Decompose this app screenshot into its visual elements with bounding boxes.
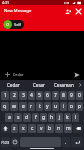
button[interactable]: y [44,102,51,111]
staticText: l [75,114,77,121]
button[interactable]: 3 [19,91,27,100]
button[interactable]: Cesarean [51,80,76,90]
staticText: w [12,103,16,110]
button[interactable]: O [3,20,21,29]
button[interactable]: g [40,113,47,122]
staticText: t [39,103,41,110]
button[interactable]: Shift [1,124,10,133]
button[interactable]: 5 [36,91,43,100]
button[interactable]: n [55,124,63,133]
button[interactable]: Enter [71,137,83,147]
button[interactable]: Add person [62,6,73,17]
staticText: . [65,139,67,146]
button[interactable]: k [64,113,71,122]
button[interactable]: f [32,113,39,122]
button[interactable]: h [48,113,55,122]
button[interactable]: Backspace [73,124,83,133]
button[interactable]: u [52,102,59,111]
button[interactable]: 8 [60,91,67,100]
staticText: p [78,103,82,110]
staticText: 4:31 [2,0,9,5]
button[interactable]: l [72,113,79,122]
button[interactable]: s [14,113,22,122]
button[interactable]: m [64,124,72,133]
button[interactable]: t [36,102,43,111]
button[interactable]: r [28,102,35,111]
staticText: z [13,125,16,132]
staticText: g [42,114,46,121]
button[interactable]: 9 [68,91,75,100]
button[interactable]: . [62,137,70,147]
button[interactable]: b [46,124,54,133]
staticText: ?123 [1,140,10,145]
button[interactable]: i [60,102,67,111]
staticText: j [59,114,61,121]
staticText: v [40,125,43,132]
staticText: b [48,125,52,132]
staticText: 0 [78,92,81,99]
staticText: o [70,103,74,110]
staticText: New Message [4,8,32,14]
button[interactable]: o [68,102,75,111]
button[interactable]: q [1,102,9,111]
staticText: 9 [70,92,73,99]
staticText: k [66,114,69,121]
button[interactable]: z [11,124,18,133]
button[interactable]: e [19,102,27,111]
button[interactable]: 0 [76,91,83,100]
staticText: y [46,103,49,110]
staticText: d [25,114,29,121]
button[interactable]: 6 [44,91,51,100]
button[interactable]: 1 [1,91,9,100]
staticText: c [31,125,34,132]
staticText: m [66,125,71,132]
staticText: n [57,125,61,132]
staticText: h [50,114,54,121]
button[interactable]: c [28,124,36,133]
button[interactable]: ?123 [1,137,10,147]
button[interactable]: x [19,124,27,133]
staticText: 4 [30,92,33,99]
button[interactable]: v [37,124,45,133]
staticText: 1 [4,92,7,99]
staticText: i [63,103,65,110]
button[interactable]: Send [71,69,83,80]
staticText: 5 [38,92,41,99]
staticText: f [35,114,37,121]
staticText: q [3,103,7,110]
staticText: Self [14,22,21,27]
button[interactable]: w [10,102,18,111]
staticText: Cedar [7,82,20,88]
staticText: u [54,103,58,110]
button[interactable]: 4 [28,91,35,100]
button[interactable]: p [76,102,83,111]
staticText: 6 [46,92,49,99]
staticText: 7 [54,92,57,99]
button[interactable]: More suggestions [76,80,84,90]
staticText: Cesarean [54,82,74,88]
staticText: a [8,114,11,121]
button[interactable]: 2 [10,91,18,100]
button[interactable]: Close [73,6,84,17]
button[interactable]: 7 [52,91,59,100]
staticText: e [22,103,25,110]
staticText: 3 [22,92,25,99]
staticText: Cesar [33,82,45,88]
staticText: O [6,22,10,28]
button[interactable]: Attach [1,69,13,80]
button[interactable]: a [5,113,13,122]
staticText: Cedar [13,72,24,77]
button[interactable]: j [56,113,63,122]
staticText: x [22,125,25,132]
staticText: 8 [62,92,65,99]
button[interactable]: Emoji [11,137,19,147]
button[interactable]: Cedar [0,80,26,90]
button[interactable]: d [23,113,31,122]
staticText: 2 [13,92,16,99]
button[interactable]: Cesar [26,80,51,90]
staticText: r [30,103,33,110]
staticText: s [17,114,20,121]
